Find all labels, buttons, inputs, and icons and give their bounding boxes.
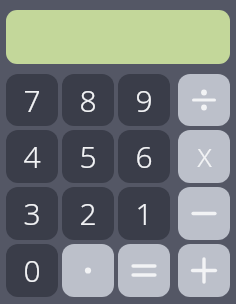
button[interactable]: Divide bbox=[178, 74, 230, 126]
staticText: 8 bbox=[79, 80, 97, 121]
button[interactable]: 4 bbox=[6, 130, 58, 183]
button[interactable]: Multiply bbox=[178, 130, 230, 183]
staticText: 7 bbox=[23, 80, 41, 121]
staticText: 4 bbox=[23, 136, 41, 177]
button[interactable]: Display bbox=[6, 10, 230, 64]
button[interactable]: 8 bbox=[62, 74, 114, 126]
button[interactable]: 3 bbox=[6, 187, 58, 240]
staticText: 6 bbox=[135, 136, 153, 177]
staticText: 0 bbox=[23, 250, 41, 291]
staticText: X bbox=[197, 139, 212, 174]
button[interactable]: 2 bbox=[62, 187, 114, 240]
button[interactable]: Equals bbox=[118, 244, 170, 297]
staticText: 5 bbox=[79, 136, 97, 177]
button[interactable]: 0 bbox=[6, 244, 58, 297]
staticText: 1 bbox=[135, 193, 153, 234]
button[interactable]: Subtract bbox=[178, 187, 230, 240]
button[interactable]: Decimal point bbox=[62, 244, 114, 297]
button[interactable]: Add bbox=[178, 244, 230, 297]
button[interactable]: 1 bbox=[118, 187, 170, 240]
button[interactable]: 7 bbox=[6, 74, 58, 126]
staticText: 2 bbox=[79, 193, 97, 234]
button[interactable]: 5 bbox=[62, 130, 114, 183]
button[interactable]: 6 bbox=[118, 130, 170, 183]
button[interactable]: 9 bbox=[118, 74, 170, 126]
staticText: 3 bbox=[23, 193, 41, 234]
staticText: 9 bbox=[135, 80, 153, 121]
